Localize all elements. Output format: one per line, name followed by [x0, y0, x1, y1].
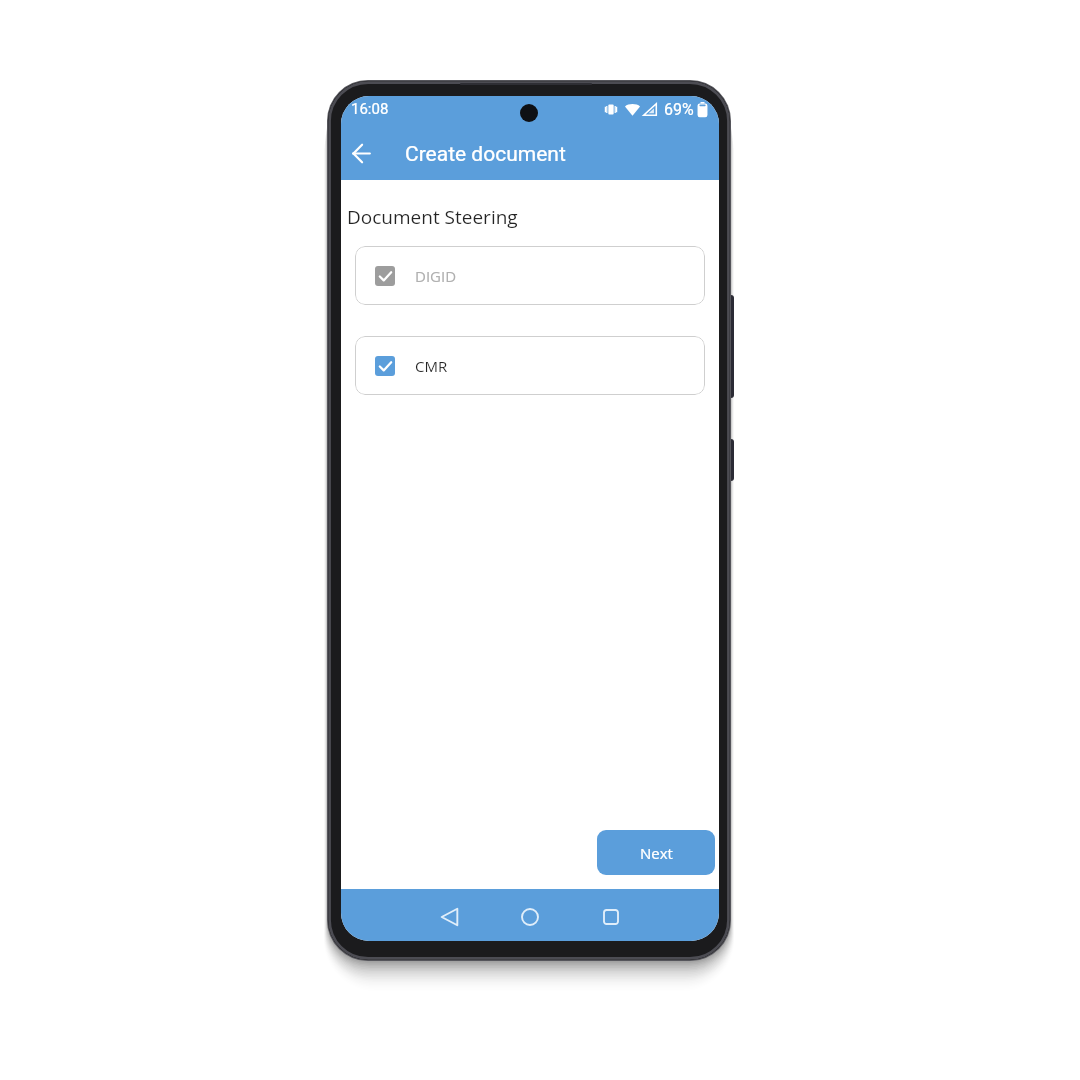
staticText: 16:08	[351, 100, 389, 118]
button[interactable]: CMR	[355, 336, 705, 395]
button[interactable]: Recent apps	[588, 894, 634, 940]
staticText: Document Steering	[347, 204, 518, 230]
staticText: 69%	[664, 100, 694, 119]
staticText: Create document	[405, 142, 566, 167]
button[interactable]: Back	[426, 894, 472, 940]
button[interactable]: Home	[507, 894, 553, 940]
staticText: Next	[640, 843, 673, 863]
button[interactable]: Next	[597, 830, 715, 875]
button[interactable]: Back	[341, 132, 382, 174]
staticText: CMR	[415, 356, 448, 376]
staticText: DIGID	[415, 266, 457, 286]
button[interactable]: DIGID	[355, 246, 705, 305]
